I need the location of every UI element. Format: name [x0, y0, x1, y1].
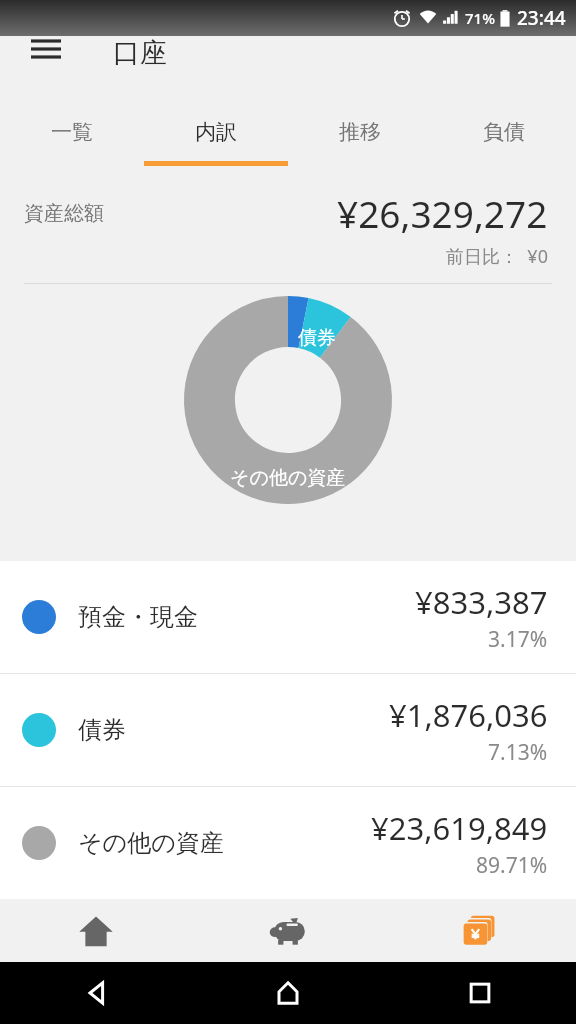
staticText: ¥833,387 — [415, 581, 548, 623]
staticText: 預金・現金 — [78, 602, 198, 632]
button[interactable]: Menu — [22, 36, 70, 84]
button[interactable]: 債券 — [0, 674, 576, 786]
staticText: その他の資産 — [78, 828, 224, 858]
staticText: 内訳 — [195, 119, 237, 145]
staticText: ¥23,619,849 — [371, 807, 548, 849]
staticText: 債券 — [298, 326, 336, 350]
staticText: その他の資産 — [230, 466, 346, 490]
button[interactable]: Accounts — [384, 899, 576, 962]
button[interactable]: 預金・現金 — [0, 561, 576, 673]
button[interactable]: Home — [192, 962, 384, 1024]
staticText: 71% — [465, 8, 495, 28]
staticText: 負債 — [483, 119, 525, 145]
staticText: 23:44 — [517, 5, 566, 31]
staticText: 一覧 — [51, 119, 93, 145]
staticText: ¥1,876,036 — [389, 694, 548, 736]
button[interactable]: Home — [0, 899, 192, 962]
button[interactable]: Savings — [192, 899, 384, 962]
button[interactable]: Back — [0, 962, 192, 1024]
button[interactable]: 推移 — [288, 98, 432, 166]
staticText: 債券 — [78, 715, 126, 745]
staticText: 3.17% — [488, 625, 548, 654]
button[interactable]: 一覧 — [0, 98, 144, 166]
staticText: 7.13% — [488, 738, 548, 767]
button[interactable]: 負債 — [432, 98, 576, 166]
staticText: 前日比： ¥0 — [446, 244, 548, 269]
button[interactable]: その他の資産 — [0, 787, 576, 899]
staticText: 資産総額 — [24, 201, 104, 226]
button[interactable]: Recents — [384, 962, 576, 1024]
staticText: ¥26,329,272 — [337, 188, 548, 238]
button[interactable]: 内訳 — [144, 98, 288, 166]
staticText: 89.71% — [476, 851, 548, 880]
staticText: 口座 — [113, 36, 167, 70]
staticText: 推移 — [339, 119, 381, 145]
